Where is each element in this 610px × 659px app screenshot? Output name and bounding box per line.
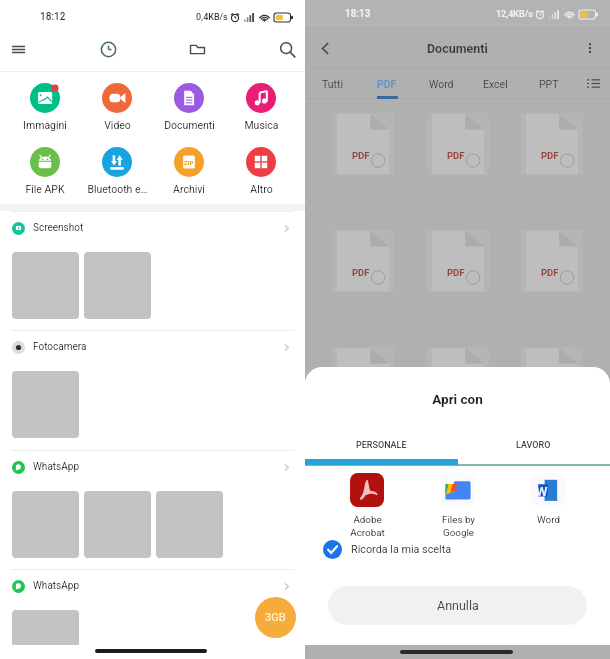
button[interactable]: Recent files bbox=[98, 28, 118, 70]
button[interactable]: Back bbox=[305, 28, 345, 68]
button[interactable]: Ricorda la mia scelta bbox=[323, 538, 610, 560]
button[interactable]: W bbox=[508, 473, 588, 525]
staticText: Video bbox=[104, 119, 131, 131]
button[interactable]: Video bbox=[81, 83, 153, 131]
button[interactable]: More options bbox=[570, 28, 610, 68]
button[interactable]: Annulla bbox=[328, 586, 587, 625]
button[interactable]: Sort order bbox=[576, 68, 610, 99]
staticText: Archivi bbox=[173, 183, 205, 195]
button[interactable]: PDF bbox=[521, 113, 583, 175]
button[interactable]: PPT bbox=[522, 68, 576, 99]
staticText: PDF bbox=[352, 150, 370, 161]
button[interactable]: Tutti bbox=[305, 68, 360, 99]
button[interactable]: Bluetooth e… bbox=[81, 147, 153, 195]
staticText: PERSONALE bbox=[356, 440, 407, 451]
staticText: Musica bbox=[244, 119, 279, 131]
staticText: PDF bbox=[447, 384, 465, 395]
staticText: PDF bbox=[352, 267, 370, 278]
staticText: Files by Google bbox=[442, 514, 475, 538]
staticText: WhatsApp bbox=[33, 580, 80, 592]
staticText: 18:13 bbox=[345, 8, 371, 20]
staticText: ZIP bbox=[184, 159, 194, 166]
staticText: Ricorda la mia scelta bbox=[351, 543, 452, 556]
staticText: PDF bbox=[447, 267, 465, 278]
staticText: Excel bbox=[483, 78, 508, 90]
staticText: Bluetooth e… bbox=[87, 183, 148, 195]
button[interactable]: Fotocamera bbox=[0, 331, 305, 363]
staticText: Annulla bbox=[437, 598, 479, 613]
button[interactable]: PDF bbox=[427, 347, 489, 409]
button[interactable]: File APK bbox=[8, 147, 81, 195]
button[interactable]: PDF bbox=[332, 230, 394, 292]
staticText: Word bbox=[537, 514, 560, 525]
staticText: Altro bbox=[250, 183, 273, 195]
button[interactable]: Adobe Acrobat bbox=[327, 473, 407, 538]
button[interactable]: Musica bbox=[225, 83, 297, 131]
button[interactable]: Menu bbox=[8, 28, 28, 70]
staticText: Adobe Acrobat bbox=[350, 514, 385, 538]
staticText: Word bbox=[429, 78, 454, 90]
staticText: 0,4KB/s bbox=[196, 12, 228, 23]
staticText: Apri con bbox=[305, 391, 610, 407]
button[interactable]: WhatsApp bbox=[0, 451, 305, 483]
button[interactable]: LAVORO bbox=[457, 433, 610, 457]
staticText: PDF bbox=[541, 267, 559, 278]
button[interactable]: Files by Google bbox=[418, 473, 498, 538]
staticText: W bbox=[536, 484, 548, 499]
staticText: 3GB bbox=[265, 611, 286, 624]
staticText: Fotocamera bbox=[33, 341, 87, 353]
button[interactable]: PDF bbox=[521, 230, 583, 292]
button[interactable]: Altro bbox=[225, 147, 297, 195]
staticText: Documenti bbox=[427, 41, 488, 56]
button[interactable]: PDF bbox=[427, 113, 489, 175]
staticText: File APK bbox=[25, 183, 65, 195]
button[interactable]: Search bbox=[277, 28, 297, 70]
button[interactable]: Word bbox=[414, 68, 468, 99]
button[interactable]: Folders bbox=[187, 28, 207, 70]
staticText: WhatsApp bbox=[33, 461, 80, 473]
button[interactable]: 3GB bbox=[255, 597, 296, 638]
button[interactable]: ZIP bbox=[153, 147, 225, 195]
button[interactable]: PDF bbox=[521, 347, 583, 409]
staticText: PDF bbox=[447, 150, 465, 161]
button[interactable]: Documenti bbox=[153, 83, 225, 131]
button[interactable]: PDF bbox=[332, 113, 394, 175]
staticText: Documenti bbox=[164, 119, 215, 131]
staticText: Screenshot bbox=[33, 222, 84, 234]
staticText: Tutti bbox=[322, 78, 343, 90]
staticText: PDF bbox=[541, 150, 559, 161]
staticText: Immagini bbox=[23, 119, 67, 131]
button[interactable]: PDF bbox=[360, 68, 414, 99]
staticText: 12,4KB/s bbox=[496, 9, 533, 20]
staticText: LAVORO bbox=[516, 440, 551, 451]
staticText: PDF bbox=[377, 78, 397, 90]
staticText: 18:12 bbox=[40, 11, 66, 23]
button[interactable]: WhatsApp bbox=[0, 570, 305, 602]
button[interactable]: Screenshot bbox=[0, 212, 305, 244]
button[interactable]: Excel bbox=[468, 68, 522, 99]
button[interactable]: PDF bbox=[332, 347, 394, 409]
button[interactable]: PDF bbox=[427, 230, 489, 292]
button[interactable]: Immagini bbox=[8, 83, 81, 131]
button[interactable]: PERSONALE bbox=[305, 433, 457, 457]
staticText: PPT bbox=[539, 78, 559, 90]
